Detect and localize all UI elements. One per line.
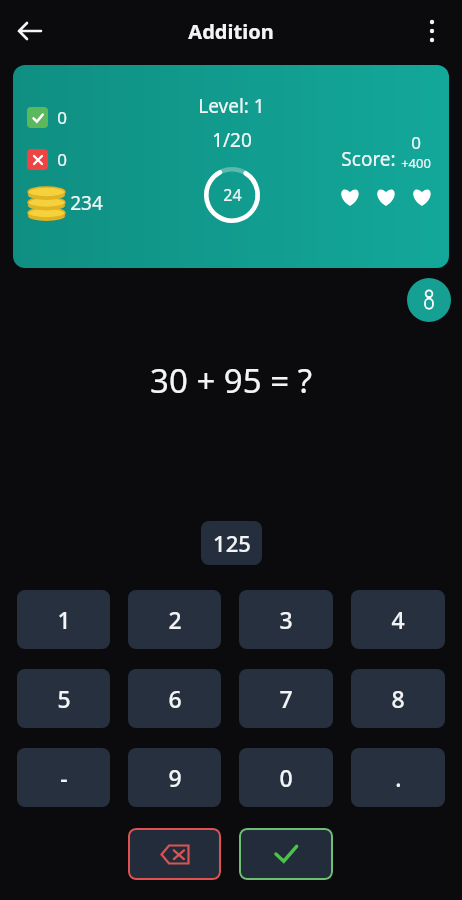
staticText: 0 (57, 106, 67, 129)
staticText: 5 (57, 683, 71, 714)
button[interactable]: 2 (128, 590, 221, 649)
staticText: 0 (279, 762, 293, 793)
button[interactable]: - (17, 748, 110, 807)
staticText: 234 (70, 190, 103, 216)
button[interactable]: 4 (351, 590, 445, 649)
button[interactable]: 8 (351, 669, 445, 728)
staticText: 1 (57, 604, 71, 635)
staticText: 8 (391, 683, 405, 714)
staticText: 2 (168, 604, 182, 635)
staticText: 0 (57, 148, 67, 171)
staticText: 7 (279, 683, 293, 714)
button[interactable]: 1 (17, 590, 110, 649)
staticText: Score: (341, 146, 396, 172)
staticText: Addition (0, 18, 462, 45)
staticText: Level: 1 (198, 93, 265, 119)
staticText: 30 + 95 = ? (0, 358, 462, 403)
staticText: - (60, 762, 68, 793)
button[interactable]: . (351, 748, 445, 807)
button[interactable]: Backspace (128, 828, 221, 880)
staticText: 6 (168, 683, 182, 714)
button[interactable]: 0 (239, 748, 333, 807)
staticText: 1/20 (212, 127, 252, 153)
staticText: 125 (213, 528, 251, 558)
staticText: +400 (401, 154, 431, 172)
staticText: 3 (279, 604, 293, 635)
staticText: 0 (411, 131, 421, 154)
button[interactable]: 7 (239, 669, 333, 728)
button[interactable]: Info (407, 278, 451, 322)
staticText: 24 (223, 184, 242, 206)
staticText: 4 (391, 604, 405, 635)
button[interactable]: Submit answer (239, 828, 333, 880)
button[interactable]: 5 (17, 669, 110, 728)
button[interactable]: 3 (239, 590, 333, 649)
staticText: 9 (168, 762, 182, 793)
button[interactable]: More options (410, 9, 454, 53)
button[interactable]: 9 (128, 748, 221, 807)
staticText: . (395, 762, 402, 793)
button[interactable]: 6 (128, 669, 221, 728)
button[interactable]: 125 (201, 521, 262, 565)
button[interactable]: Back (8, 9, 52, 53)
